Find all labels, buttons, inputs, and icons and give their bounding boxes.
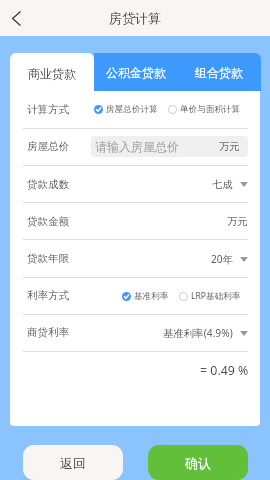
staticText: 贷款成数 [27, 178, 69, 191]
staticText: 房贷计算 [109, 10, 161, 26]
staticText: 贷款年限 [27, 252, 69, 265]
button[interactable]: 单价与面积计算 [168, 104, 241, 115]
staticText: 计算方式 [27, 103, 69, 116]
staticText: 商贷利率 [27, 326, 69, 339]
button[interactable]: 基准利率(4.9%) [163, 326, 248, 340]
button[interactable]: 组合贷款 [177, 53, 261, 91]
staticText: 房屋总价 [27, 140, 69, 153]
staticText: 确认 [185, 455, 211, 471]
button[interactable]: 20年 [211, 252, 248, 266]
staticText: 贷款金额 [27, 215, 69, 228]
button[interactable]: LRP基础利率 [179, 290, 241, 302]
staticText: 组合贷款 [195, 65, 243, 80]
staticText: 基准利率(4.9%) [163, 326, 233, 340]
staticText: 万元 [219, 140, 240, 153]
button[interactable]: 公积金贷款 [94, 53, 177, 91]
button[interactable]: 确认 [148, 445, 248, 480]
staticText: 七成 [212, 178, 233, 191]
staticText: 利率方式 [27, 289, 69, 302]
button[interactable]: 房屋总价计算 [94, 104, 158, 115]
staticText: 房屋总价计算 [106, 104, 158, 115]
button[interactable]: Back [0, 2, 32, 34]
staticText: 基准利率 [134, 291, 169, 302]
staticText: 单价与面积计算 [180, 104, 241, 115]
staticText: 万元 [227, 215, 248, 228]
staticText: 20年 [211, 252, 233, 266]
button[interactable]: 基准利率 [122, 291, 169, 302]
button[interactable]: 请输入房屋总价 [91, 136, 248, 157]
button[interactable]: 七成 [212, 178, 248, 191]
staticText: = 0.49 % [200, 362, 249, 379]
staticText: 请输入房屋总价 [95, 139, 179, 154]
button[interactable]: 商业贷款 [10, 53, 94, 93]
staticText: 公积金贷款 [106, 65, 166, 80]
staticText: 商业贷款 [28, 66, 76, 81]
staticText: LRP基础利率 [191, 290, 241, 302]
staticText: 返回 [60, 455, 86, 471]
button[interactable]: 返回 [23, 445, 123, 480]
